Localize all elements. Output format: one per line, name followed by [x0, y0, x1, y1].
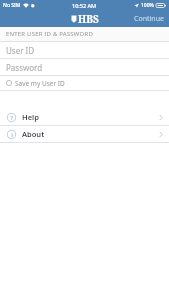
other: Open [159, 131, 163, 138]
button[interactable]: Password [0, 59, 169, 75]
staticText: HBS [78, 12, 99, 26]
staticText: ● [31, 3, 35, 8]
staticText: About [22, 129, 45, 139]
button[interactable]: ? [0, 109, 169, 125]
other: Open [159, 114, 163, 121]
button[interactable]: i [0, 126, 169, 142]
staticText: ? [10, 114, 13, 122]
staticText: Password [6, 62, 43, 73]
staticText: User ID [6, 45, 35, 56]
staticText: Continue [134, 14, 164, 24]
staticText: 100% [141, 2, 154, 9]
staticText: No SIM [3, 2, 21, 9]
button[interactable]: Save my User ID [0, 76, 169, 90]
staticText: ENTER USER ID & PASSWORD [6, 30, 93, 38]
button[interactable]: Continue [129, 11, 169, 27]
staticText: Save my User ID [15, 79, 65, 88]
staticText: 10:52 AM [72, 2, 97, 9]
button[interactable]: User ID [0, 42, 169, 58]
staticText: Help [22, 112, 39, 122]
staticText: i [11, 131, 13, 139]
